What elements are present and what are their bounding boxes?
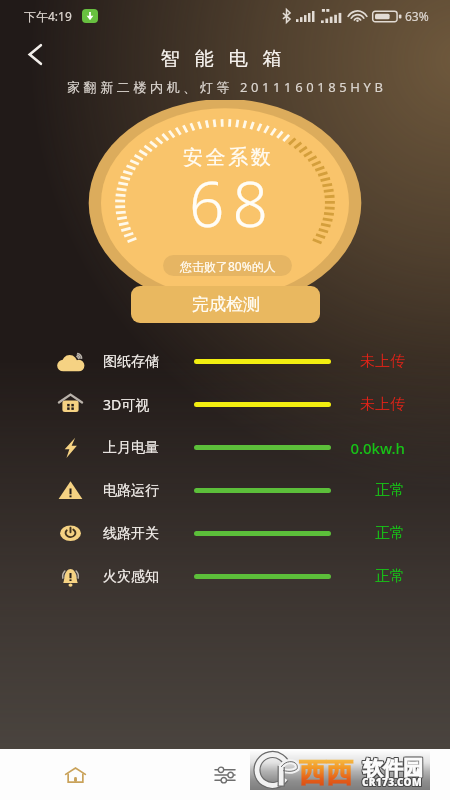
button[interactable]: Home [50, 750, 100, 800]
staticText: 软件园 [364, 755, 424, 780]
button[interactable]: Back [17, 36, 53, 72]
staticText: 正常 [345, 567, 405, 586]
staticText: 正常 [345, 481, 405, 500]
button[interactable]: 火灾感知 [0, 555, 450, 598]
button[interactable]: Settings [200, 750, 250, 800]
staticText: 下午4:19 [24, 8, 72, 24]
staticText: 完成检测 [192, 294, 260, 315]
staticText: 智能电箱 [153, 47, 289, 71]
staticText: CR173.COM [361, 774, 421, 788]
staticText: 家翻新二楼内机、灯等 2011160185HYB [67, 78, 387, 96]
staticText: 您击败了80%的人 [180, 258, 276, 274]
staticText: 软件园 [363, 757, 423, 782]
staticText: CR173.COM [362, 775, 422, 789]
button[interactable]: 电路运行 [0, 469, 450, 512]
staticText: CR173.COM [361, 776, 421, 790]
staticText: 西西 [299, 756, 353, 790]
staticText: 软件园 [363, 755, 423, 780]
staticText: 3D可视 [103, 395, 150, 414]
staticText: 正常 [345, 524, 405, 543]
staticText: 软件园 [364, 757, 424, 782]
staticText: CR173.COM [361, 775, 421, 789]
staticText: 上月电量 [103, 439, 159, 457]
button[interactable]: 上月电量 [0, 426, 450, 469]
staticText: 未上传 [345, 395, 405, 414]
staticText: CR173.COM [362, 774, 422, 788]
staticText: 0.0kw.h [345, 438, 405, 458]
staticText: 安全系数 [183, 145, 274, 170]
staticText: 软件园 [362, 757, 422, 782]
staticText: CR173.COM [362, 776, 422, 790]
staticText: 火灾感知 [103, 568, 159, 586]
staticText: 未上传 [345, 352, 405, 371]
staticText: 63% [405, 8, 429, 24]
staticText: CR173.COM [363, 774, 423, 788]
button[interactable]: Profile [350, 750, 400, 800]
button[interactable]: 完成检测 [131, 286, 320, 323]
staticText: 电路运行 [103, 482, 159, 500]
staticText: 软件园 [364, 756, 424, 781]
staticText: 68 [189, 161, 276, 245]
button[interactable]: 3D可视 [0, 383, 450, 426]
staticText: 图纸存储 [103, 353, 159, 371]
button[interactable]: 线路开关 [0, 512, 450, 555]
staticText: 软件园 [363, 756, 423, 781]
staticText: CR173.COM [363, 776, 423, 790]
staticText: 线路开关 [103, 525, 159, 543]
staticText: 软件园 [362, 755, 422, 780]
staticText: 软件园 [362, 756, 422, 781]
staticText: CR173.COM [363, 775, 423, 789]
button[interactable]: 图纸存储 [0, 340, 450, 383]
